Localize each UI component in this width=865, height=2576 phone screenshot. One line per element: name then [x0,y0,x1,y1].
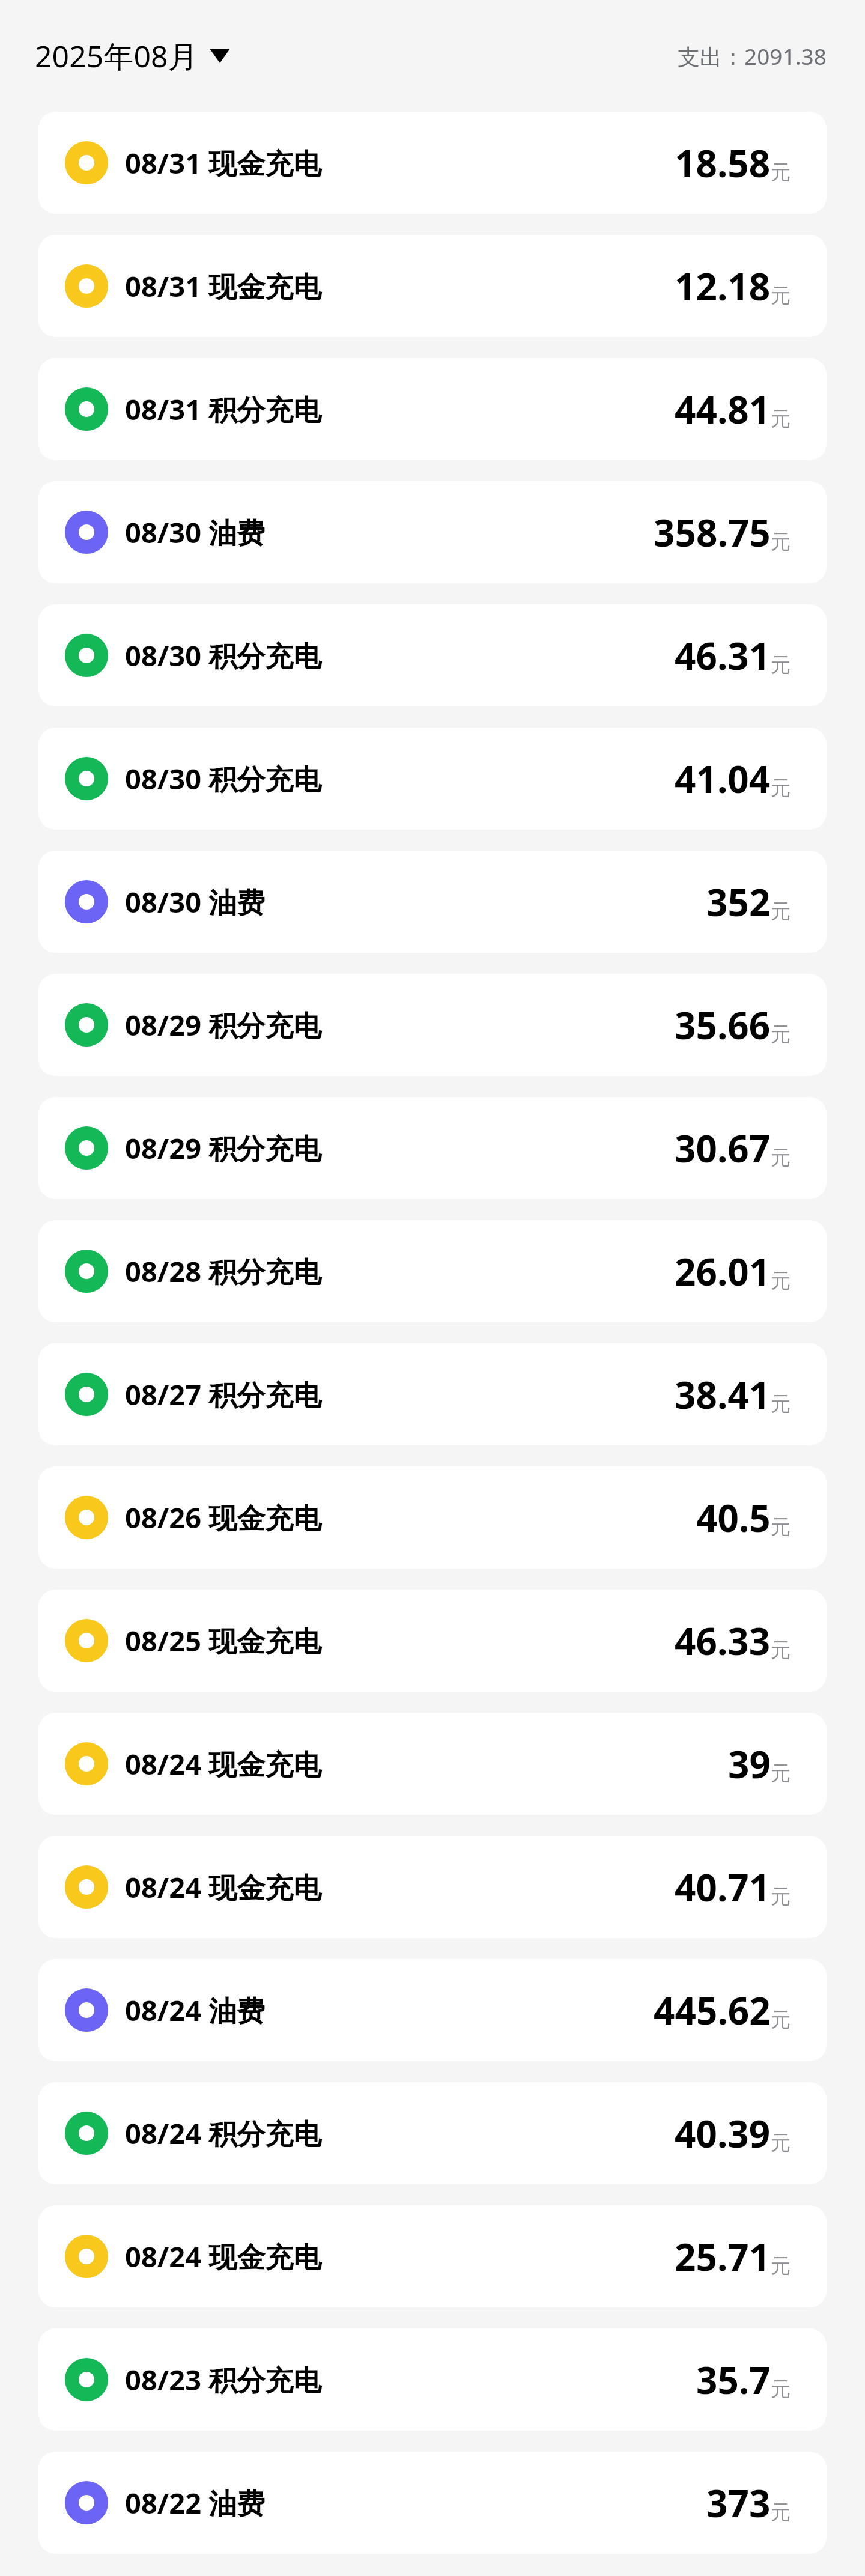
staticText: 41.04 [675,753,771,804]
button[interactable]: 08/29 积分充电 [38,974,827,1076]
button[interactable]: 08/31 现金充电 [38,112,827,214]
staticText: 08/23 积分充电 [125,2360,322,2399]
staticText: 08/26 现金充电 [125,1498,322,1537]
button[interactable]: 08/24 现金充电 [38,1713,827,1815]
staticText: 35.7 [696,2354,771,2405]
button[interactable]: 08/24 现金充电 [38,1836,827,1938]
staticText: 元 [771,1638,791,1663]
button[interactable]: 08/31 积分充电 [38,358,827,460]
staticText: 358.75 [654,507,771,557]
staticText: 08/28 积分充电 [125,1252,322,1290]
staticText: 35.66 [675,1000,771,1050]
staticText: 373 [706,2477,771,2528]
staticText: 46.31 [675,630,771,681]
button[interactable]: 08/24 现金充电 [38,2205,827,2307]
button[interactable]: 08/22 油费 [38,2452,827,2554]
staticText: 2025年08月 [35,35,198,76]
staticText: 08/24 现金充电 [125,1868,322,1906]
button[interactable]: 08/24 积分充电 [38,2082,827,2184]
staticText: 元 [771,652,791,678]
staticText: 38.41 [675,1369,771,1420]
button[interactable]: 08/30 积分充电 [38,604,827,706]
staticText: 08/27 积分充电 [125,1375,322,1414]
staticText: 元 [771,2500,791,2525]
staticText: 支出：2091.38 [678,41,827,71]
staticText: 40.39 [675,2108,771,2158]
staticText: 元 [771,2007,791,2032]
staticText: 08/29 积分充电 [125,1129,322,1167]
staticText: 352 [706,876,771,927]
staticText: 08/22 油费 [125,2483,266,2522]
staticText: 元 [771,2130,791,2155]
staticText: 元 [771,2253,791,2279]
staticText: 元 [771,283,791,308]
other: Select month [208,44,232,68]
staticText: 08/31 现金充电 [125,144,322,182]
staticText: 元 [771,776,791,801]
button[interactable]: 08/30 积分充电 [38,728,827,830]
staticText: 12.18 [675,261,771,311]
staticText: 元 [771,406,791,431]
staticText: 39 [728,1739,771,1789]
button[interactable]: 08/30 油费 [38,481,827,583]
staticText: 46.33 [675,1615,771,1666]
staticText: 08/29 积分充电 [125,1006,322,1044]
staticText: 25.71 [675,2231,771,2282]
staticText: 08/30 油费 [125,513,266,551]
button[interactable]: 08/24 油费 [38,1959,827,2061]
staticText: 元 [771,1268,791,1293]
staticText: 08/30 积分充电 [125,636,322,675]
staticText: 元 [771,1022,791,1047]
staticText: 44.81 [675,384,771,434]
staticText: 26.01 [675,1246,771,1296]
button[interactable]: 08/23 积分充电 [38,2328,827,2431]
staticText: 40.71 [675,1862,771,1912]
staticText: 08/24 现金充电 [125,2237,322,2276]
staticText: 08/25 现金充电 [125,1621,322,1660]
button[interactable]: 08/29 积分充电 [38,1097,827,1199]
button[interactable]: 08/31 现金充电 [38,235,827,337]
staticText: 元 [771,529,791,554]
staticText: 元 [771,899,791,924]
staticText: 元 [771,1145,791,1170]
button[interactable]: 08/28 积分充电 [38,1220,827,1322]
staticText: 元 [771,160,791,185]
staticText: 18.58 [675,138,771,188]
button[interactable]: 08/26 现金充电 [38,1466,827,1569]
button[interactable]: 08/25 现金充电 [38,1590,827,1692]
button[interactable]: 2025年08月 [35,35,232,76]
staticText: 元 [771,1391,791,1417]
staticText: 30.67 [675,1123,771,1173]
staticText: 08/24 油费 [125,1991,266,2029]
button[interactable]: 08/30 油费 [38,851,827,953]
button[interactable]: 08/27 积分充电 [38,1343,827,1445]
staticText: 08/24 现金充电 [125,1745,322,1783]
staticText: 元 [771,1761,791,1786]
staticText: 08/30 油费 [125,882,266,921]
staticText: 08/30 积分充电 [125,759,322,798]
staticText: 元 [771,1884,791,1909]
staticText: 40.5 [696,1492,771,1543]
staticText: 元 [771,1514,791,1540]
staticText: 元 [771,2377,791,2402]
staticText: 08/24 积分充电 [125,2114,322,2152]
staticText: 08/31 积分充电 [125,390,322,428]
staticText: 445.62 [654,1985,771,2035]
staticText: 08/31 现金充电 [125,267,322,305]
